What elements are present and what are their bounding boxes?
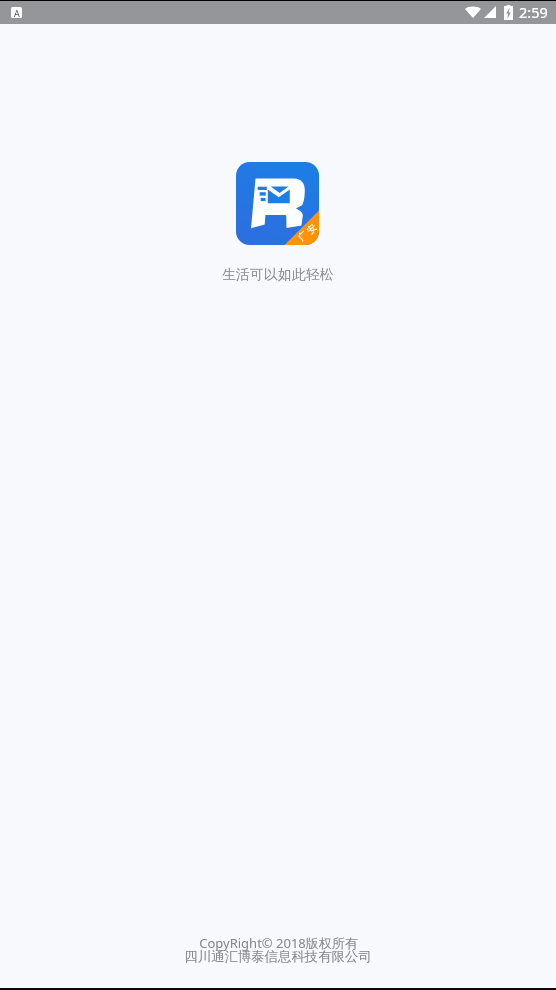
staticText: 广 bbox=[295, 228, 309, 242]
other: App logo bbox=[236, 162, 319, 245]
staticText: 四川通汇博泰信息科技有限公司 bbox=[184, 948, 372, 965]
staticText: 生活可以如此轻松 bbox=[222, 266, 334, 283]
staticText: 安 bbox=[304, 221, 318, 235]
staticText: A bbox=[14, 7, 20, 18]
staticText: 2:59 bbox=[519, 2, 548, 22]
staticText: CopyRight© 2018版权所有 bbox=[199, 934, 358, 952]
button[interactable]: App logo bbox=[236, 162, 319, 245]
